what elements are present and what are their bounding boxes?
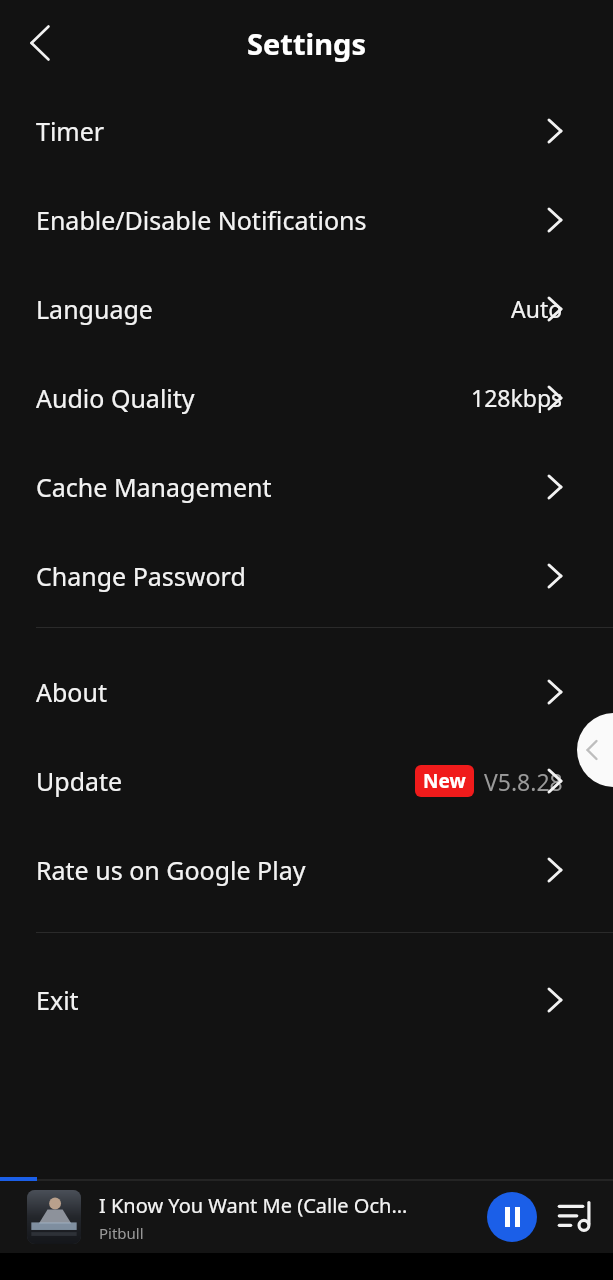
staticText: I Know You Want Me (Calle Och… — [99, 1192, 408, 1219]
button[interactable]: Enable/Disable Notifications — [0, 175, 613, 264]
staticText: Pitbull — [99, 1223, 144, 1243]
staticText: Cache Management — [36, 470, 272, 504]
staticText: 128kbps — [471, 382, 563, 413]
button[interactable]: Cache Management — [0, 442, 613, 531]
button[interactable]: Exit — [0, 955, 613, 1044]
staticText: Audio Quality — [36, 381, 195, 415]
button[interactable]: Rate us on Google Play — [0, 825, 613, 914]
staticText: About — [36, 675, 107, 709]
button[interactable]: About — [0, 647, 613, 736]
staticText: Enable/Disable Notifications — [36, 203, 367, 237]
button[interactable]: Playlist — [553, 1194, 599, 1240]
button[interactable]: Audio Quality — [0, 353, 613, 442]
button[interactable]: Change Password — [0, 531, 613, 620]
button[interactable]: I Know You Want Me (Calle Och… — [99, 1192, 481, 1243]
button[interactable]: Open drawer — [577, 713, 613, 787]
button[interactable]: Update — [0, 736, 613, 825]
staticText: Language — [36, 292, 153, 326]
staticText: Auto — [511, 293, 563, 324]
button[interactable]: Language — [0, 264, 613, 353]
staticText: Timer — [36, 114, 105, 148]
button[interactable]: Back — [14, 17, 66, 69]
staticText: Exit — [36, 983, 79, 1017]
button[interactable]: Timer — [0, 86, 613, 175]
staticText: Update — [36, 764, 123, 798]
staticText: V5.8.28 — [484, 766, 563, 797]
staticText: Rate us on Google Play — [36, 853, 306, 887]
staticText: Change Password — [36, 559, 246, 593]
staticText: New — [423, 768, 466, 794]
button[interactable]: Pause — [487, 1192, 537, 1242]
staticText: Settings — [247, 24, 366, 63]
